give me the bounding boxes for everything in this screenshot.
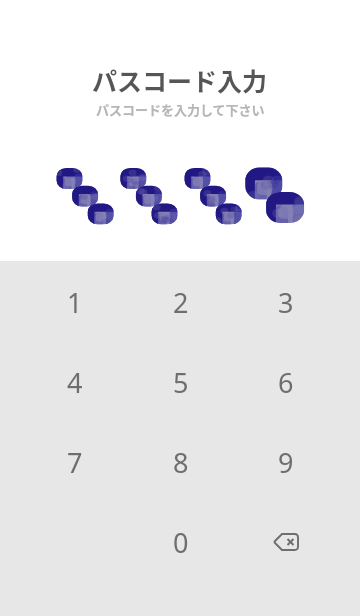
button[interactable]: 3 xyxy=(233,262,338,342)
staticText: 8 xyxy=(173,444,189,481)
staticText: 4 xyxy=(67,364,83,401)
button[interactable]: 5 xyxy=(128,342,233,422)
staticText: 6 xyxy=(278,364,294,401)
staticText: パスコード入力 xyxy=(92,62,268,98)
staticText: 5 xyxy=(173,364,189,401)
staticText: 7 xyxy=(67,444,83,481)
button[interactable]: 0 xyxy=(128,502,233,582)
button[interactable]: 4 xyxy=(22,342,128,422)
button[interactable]: 1 xyxy=(22,262,128,342)
button[interactable]: 7 xyxy=(22,422,128,502)
staticText: 9 xyxy=(278,444,294,481)
button[interactable]: 9 xyxy=(233,422,338,502)
button[interactable]: 6 xyxy=(233,342,338,422)
staticText: パスコードを入力して下さい xyxy=(96,100,265,119)
staticText: 1 xyxy=(67,284,83,321)
staticText: 0 xyxy=(173,524,189,561)
staticText: 2 xyxy=(173,284,189,321)
staticText: 3 xyxy=(278,284,294,321)
button[interactable]: Delete xyxy=(233,502,338,582)
button[interactable]: 8 xyxy=(128,422,233,502)
button[interactable]: 2 xyxy=(128,262,233,342)
